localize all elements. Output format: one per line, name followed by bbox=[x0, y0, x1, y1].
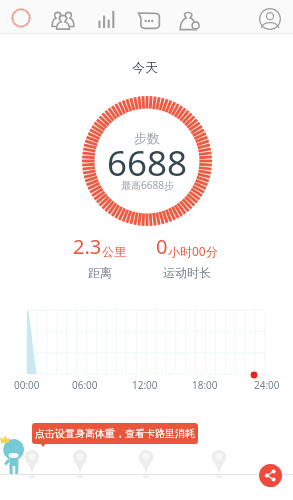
staticText: 点击设置身高体重，查看卡路里消耗 bbox=[35, 427, 195, 440]
staticText: 24:00 bbox=[254, 378, 280, 392]
staticText: 12:00 bbox=[132, 378, 158, 392]
button[interactable]: Steps bbox=[6, 3, 36, 33]
staticText: 2.3 bbox=[73, 233, 102, 260]
button[interactable]: Ranking bbox=[90, 5, 120, 35]
staticText: 最高6688步 bbox=[121, 178, 174, 192]
staticText: 0 bbox=[156, 233, 168, 260]
staticText: 06:00 bbox=[72, 378, 98, 392]
staticText: 距离 bbox=[88, 265, 112, 280]
button[interactable]: Profile bbox=[255, 4, 285, 34]
staticText: 公里 bbox=[102, 244, 126, 259]
staticText: 小时00分 bbox=[168, 243, 218, 259]
button[interactable]: Messages bbox=[134, 5, 164, 35]
button[interactable]: Friends bbox=[48, 4, 78, 34]
button[interactable]: 点击设置身高体重，查看卡路里消耗 bbox=[32, 423, 198, 444]
staticText: 6688 bbox=[107, 139, 188, 187]
staticText: 18:00 bbox=[192, 378, 218, 392]
staticText: 步数 bbox=[134, 130, 160, 146]
button[interactable]: Add friend bbox=[175, 5, 205, 35]
staticText: 00:00 bbox=[14, 378, 40, 392]
staticText: 今天 bbox=[132, 59, 158, 75]
button[interactable]: Share bbox=[259, 464, 282, 487]
staticText: 运动时长 bbox=[163, 265, 211, 280]
